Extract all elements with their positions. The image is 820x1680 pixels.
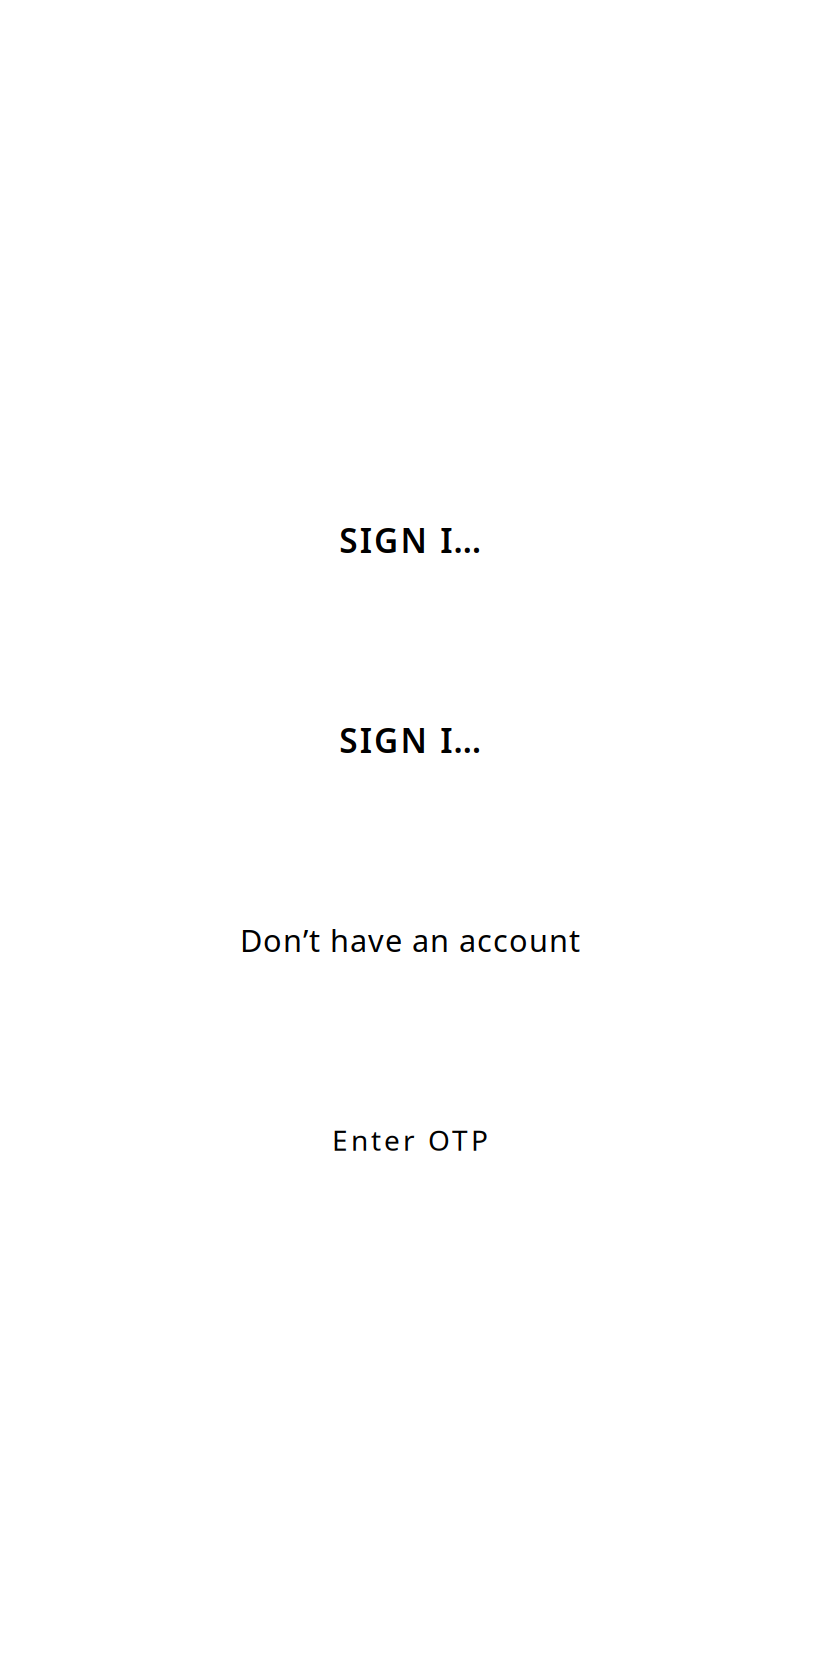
staticText: Enter OTP bbox=[332, 1121, 488, 1159]
staticText: SIGN IN bbox=[339, 718, 481, 762]
staticText: SIGN IN bbox=[339, 518, 481, 562]
staticText: Don’t have an account bbox=[240, 920, 580, 960]
